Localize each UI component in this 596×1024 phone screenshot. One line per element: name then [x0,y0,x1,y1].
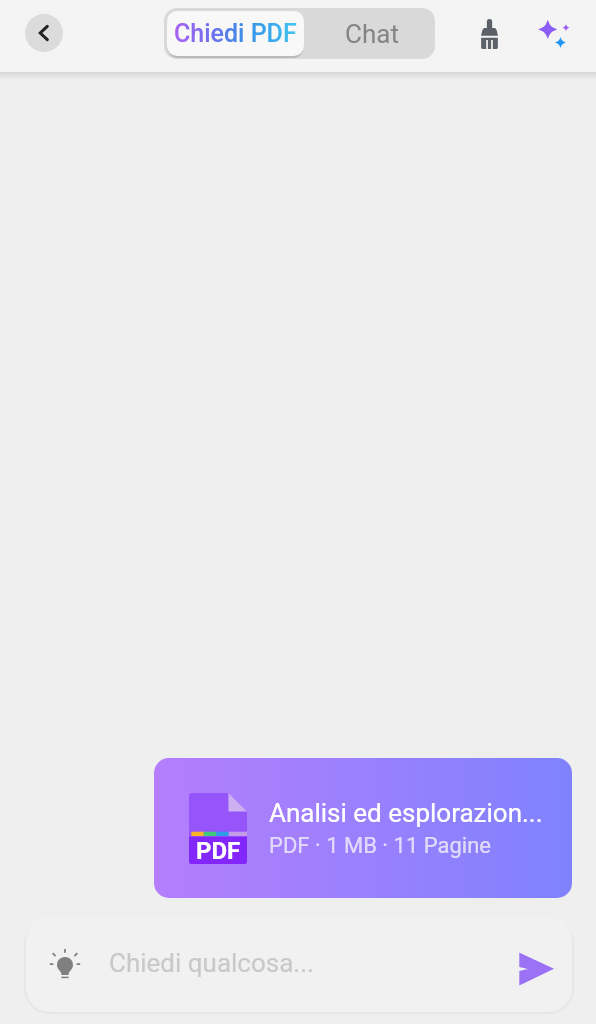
button[interactable]: Send [512,946,558,992]
staticText: PDF · 1 MB · 11 Pagine [269,833,491,859]
button[interactable]: Chiedi PDF [167,11,304,56]
button[interactable]: Suggestions [26,917,572,1012]
staticText: Analisi ed esplorazion... [269,798,543,828]
button[interactable]: Chat [306,8,435,59]
button[interactable]: PDF [154,758,572,898]
button[interactable]: Clear chat [466,11,512,57]
staticText: PDF [196,837,241,865]
button[interactable]: AI magic [528,9,580,61]
staticText: Chat [345,19,399,49]
staticText: Chiedi PDF [174,19,297,48]
button[interactable]: Suggestions [45,945,85,985]
staticText: Chiedi qualcosa... [109,948,314,978]
button[interactable]: Back [25,14,63,52]
